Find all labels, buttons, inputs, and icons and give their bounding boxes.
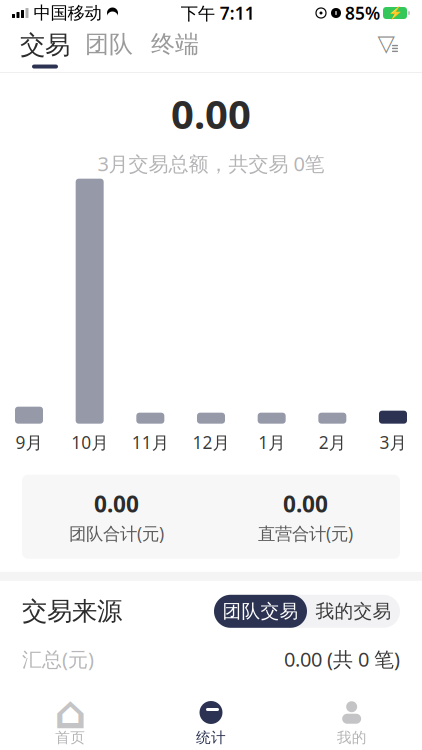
- staticText: 3月: [379, 431, 406, 454]
- staticText: 直营合计(元): [258, 522, 353, 545]
- staticText: 9月: [15, 431, 42, 454]
- staticText: 统计: [196, 728, 226, 746]
- staticText: 10月: [71, 431, 108, 454]
- staticText: 下午 7:11: [181, 1, 255, 24]
- staticText: 85%: [345, 1, 380, 24]
- staticText: 1月: [258, 431, 285, 454]
- staticText: 交易来源: [22, 596, 122, 627]
- button[interactable]: 交易: [14, 29, 76, 68]
- staticText: 11月: [132, 431, 169, 454]
- staticText: 12月: [192, 431, 229, 454]
- button[interactable]: 我的: [281, 699, 422, 746]
- staticText: 终端: [151, 29, 199, 59]
- staticText: 团队交易: [222, 600, 298, 623]
- staticText: ⚡: [387, 6, 402, 20]
- button[interactable]: 我的交易: [307, 595, 400, 628]
- staticText: 3月交易总额，共交易 0笔: [97, 150, 324, 177]
- button[interactable]: 统计: [141, 699, 281, 746]
- staticText: 交易: [20, 29, 70, 60]
- staticText: 我的: [337, 728, 367, 746]
- staticText: ▽: [377, 30, 394, 56]
- staticText: 0.00: [94, 489, 139, 519]
- staticText: 团队: [85, 29, 133, 59]
- staticText: 首页: [55, 728, 85, 746]
- staticText: 2月: [319, 431, 346, 454]
- staticText: 中国移动: [33, 2, 101, 24]
- button[interactable]: 团队交易: [214, 595, 307, 628]
- button[interactable]: 团队: [76, 29, 142, 67]
- staticText: 0.00: [283, 489, 328, 519]
- staticText: ⌂: [54, 687, 86, 738]
- staticText: 汇总(元): [22, 646, 94, 672]
- staticText: 我的交易: [315, 600, 391, 623]
- staticText: 0.00: [171, 87, 251, 140]
- button[interactable]: 筛选: [372, 29, 406, 59]
- staticText: 0.00 (共 0 笔): [284, 646, 400, 672]
- button[interactable]: 终端: [142, 29, 208, 67]
- button[interactable]: ⌂: [0, 699, 141, 746]
- staticText: 团队合计(元): [69, 522, 164, 545]
